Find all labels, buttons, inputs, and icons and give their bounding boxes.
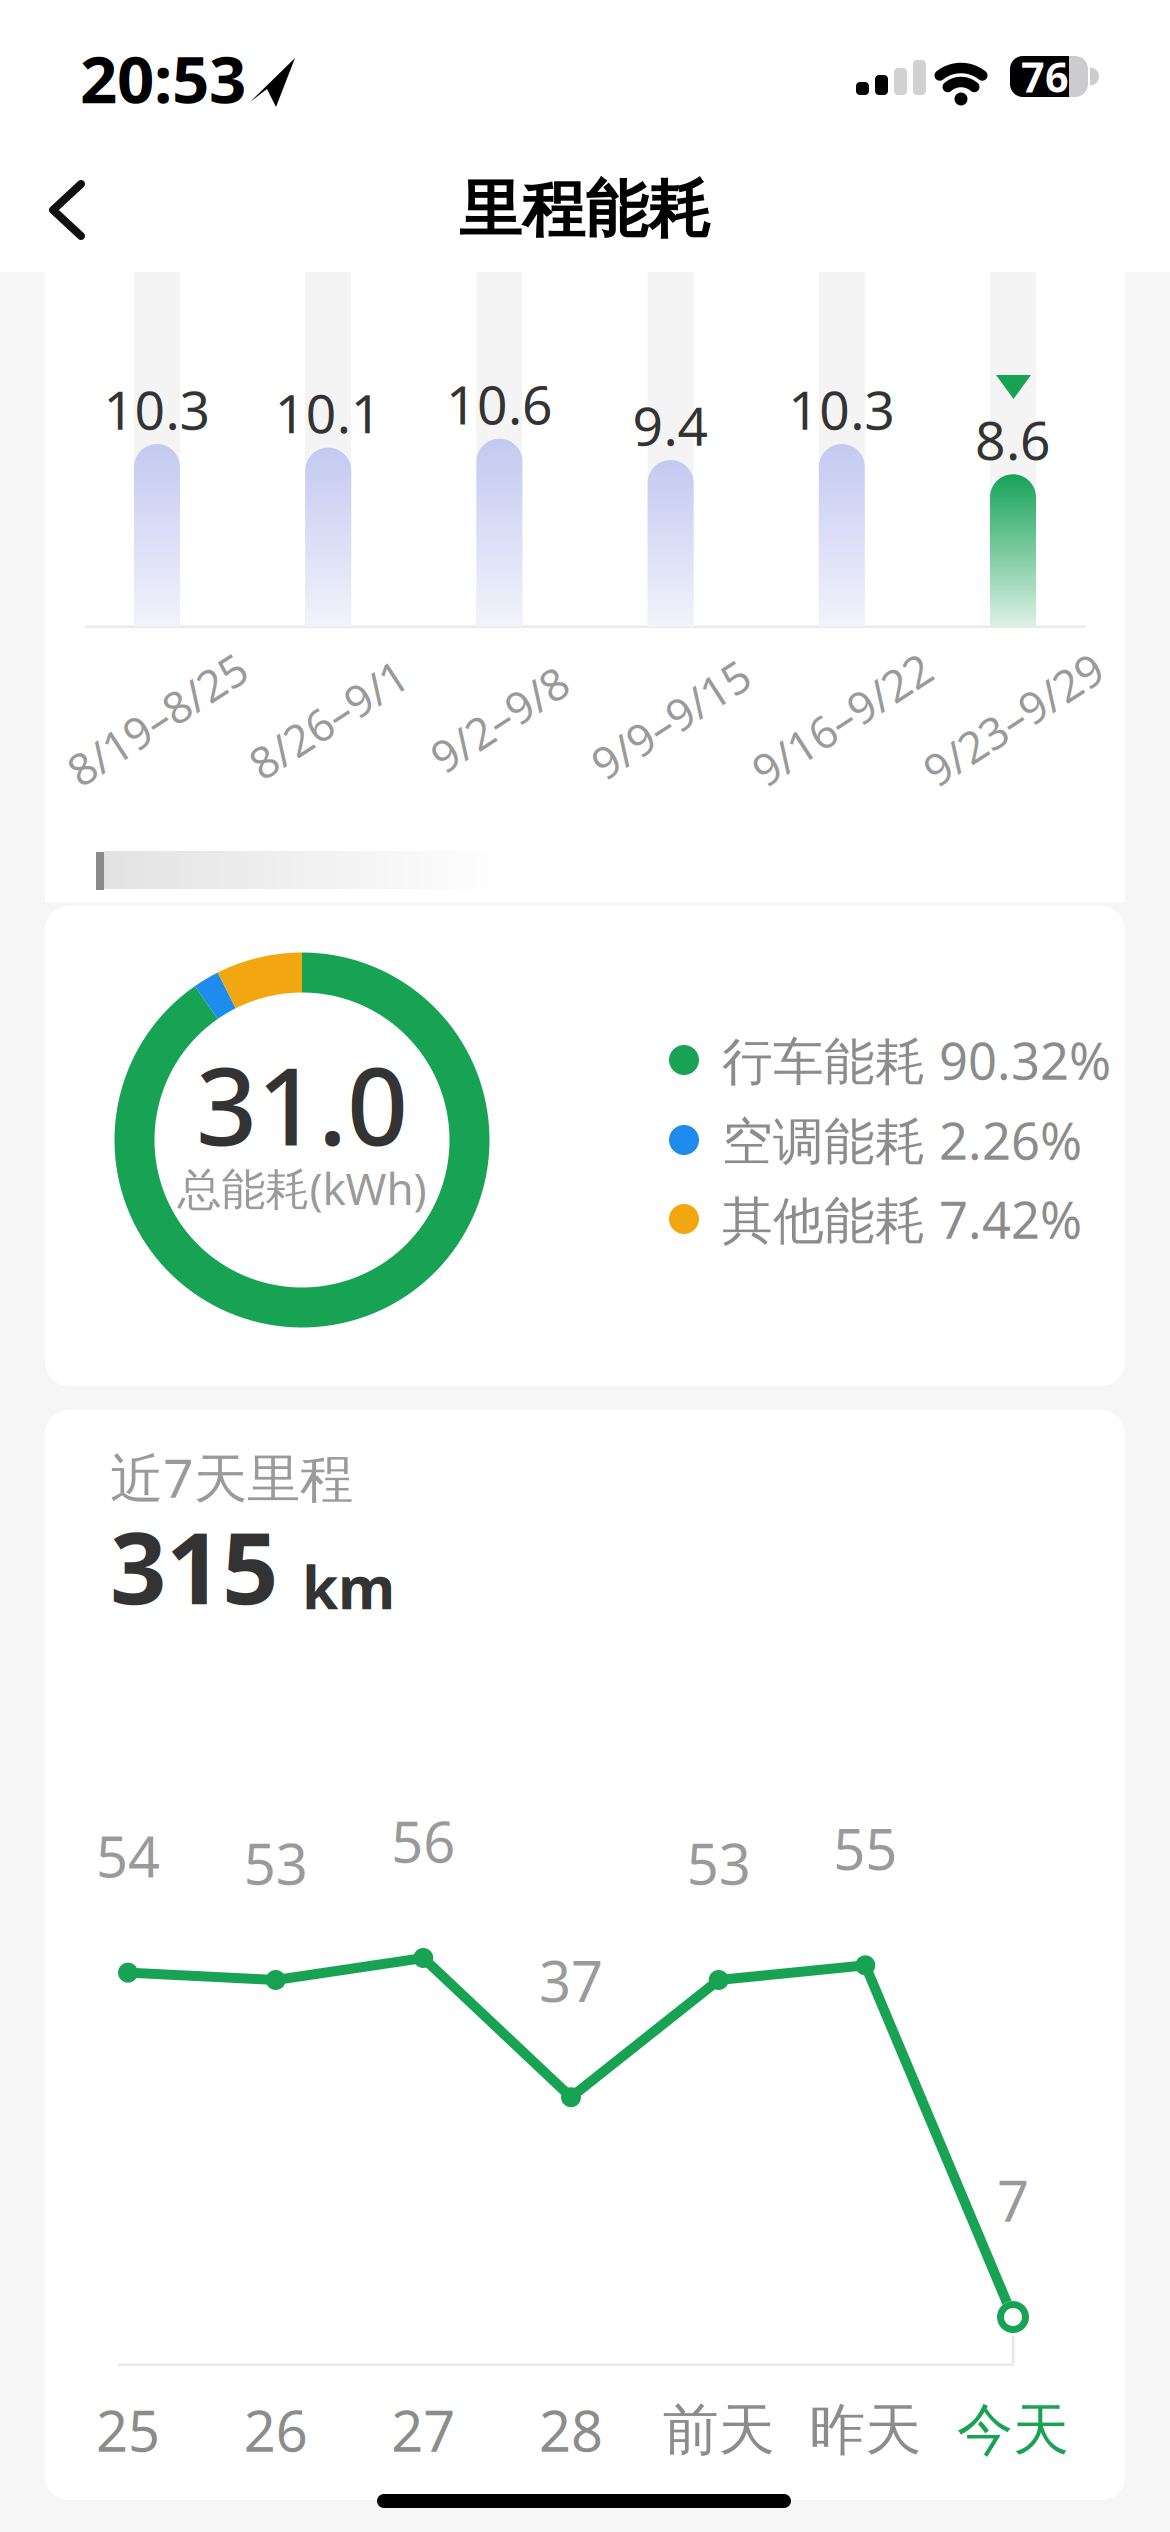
- staticText: 10.6: [446, 368, 553, 439]
- staticText: 37: [539, 1943, 603, 2017]
- staticText: 26: [244, 2393, 308, 2467]
- button[interactable]: [21, 164, 113, 256]
- staticText: 9/23–9/29: [911, 690, 1115, 748]
- staticText: 昨天: [809, 2396, 921, 2464]
- staticText: 9/16–9/22: [740, 690, 944, 748]
- staticText: 今天: [957, 2396, 1069, 2464]
- staticText: 近7天里程: [110, 1442, 353, 1512]
- staticText: 前天: [663, 2396, 775, 2464]
- staticText: 53: [244, 1826, 308, 1900]
- staticText: 9/2–9/8: [422, 690, 576, 748]
- staticText: 空调能耗 2.26%: [722, 1106, 1082, 1174]
- staticText: 总能耗(kWh): [177, 1159, 426, 1217]
- staticText: 55: [833, 1811, 897, 1885]
- staticText: 8/19–8/25: [55, 690, 259, 748]
- staticText: 9.4: [633, 390, 709, 460]
- staticText: 27: [391, 2393, 455, 2467]
- staticText: 10.3: [103, 374, 210, 444]
- staticText: km: [302, 1548, 395, 1625]
- staticText: 31.0: [196, 1033, 408, 1175]
- staticText: 行车能耗 90.32%: [722, 1026, 1111, 1094]
- staticText: 76: [1021, 49, 1069, 104]
- staticText: 20:53: [80, 35, 246, 121]
- staticText: 53: [687, 1826, 751, 1900]
- staticText: 10.1: [275, 377, 382, 448]
- staticText: 315: [110, 1500, 278, 1631]
- staticText: 10.3: [788, 374, 895, 444]
- staticText: 8/26–9/1: [239, 690, 418, 748]
- staticText: 9/9–9/15: [581, 690, 760, 748]
- staticText: 7: [997, 2163, 1029, 2237]
- staticText: 8.6: [975, 404, 1051, 475]
- staticText: 54: [96, 1818, 160, 1893]
- staticText: 25: [96, 2393, 160, 2467]
- staticText: 其他能耗 7.42%: [722, 1185, 1082, 1253]
- staticText: 28: [539, 2393, 603, 2467]
- staticText: 56: [391, 1804, 455, 1878]
- staticText: 里程能耗: [459, 171, 711, 248]
